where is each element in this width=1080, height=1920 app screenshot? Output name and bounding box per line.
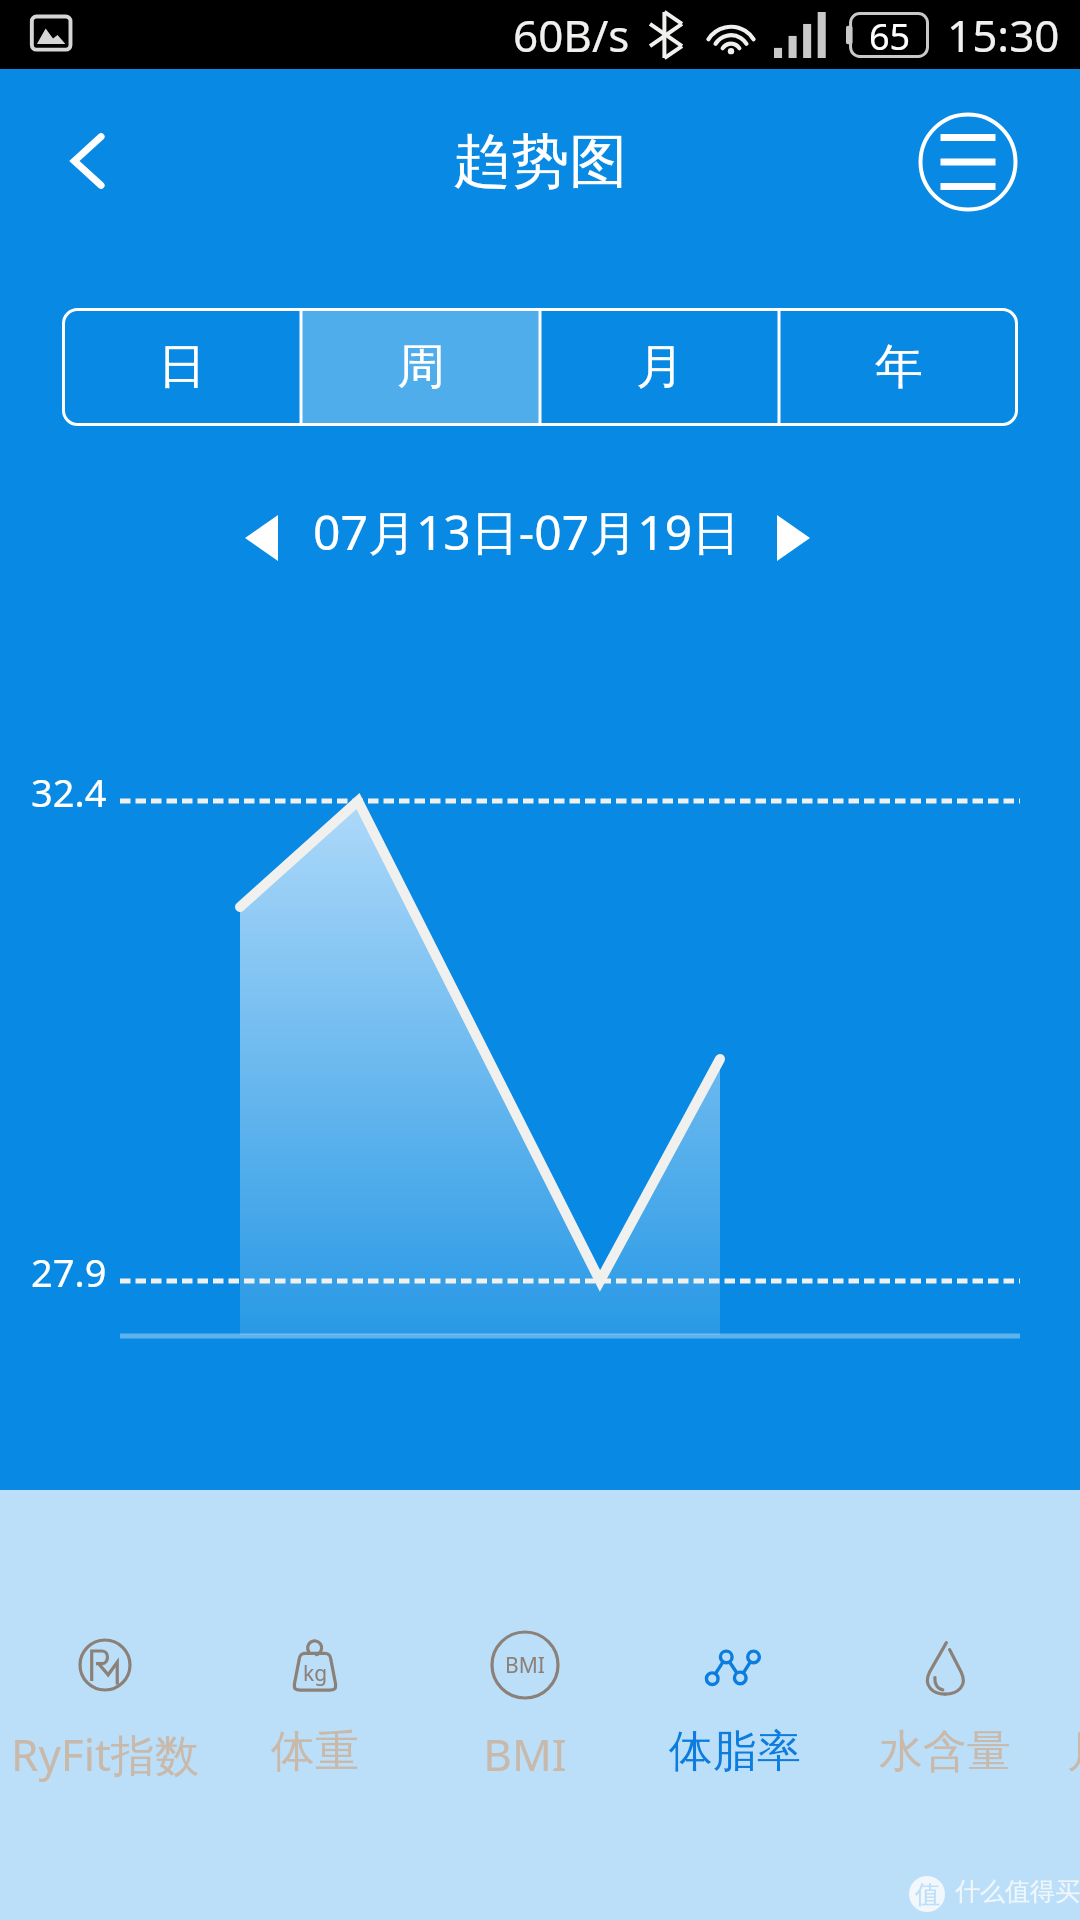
button[interactable]: 年 — [779, 308, 1018, 426]
button[interactable]: Next week — [765, 505, 821, 571]
button[interactable]: RyFit指数 — [0, 1630, 210, 1784]
staticText: 体脂率 — [669, 1724, 801, 1779]
staticText: 体重 — [271, 1724, 359, 1779]
staticText: kg — [303, 1659, 328, 1688]
staticText: 32.4 — [31, 766, 107, 818]
button[interactable]: 体重 — [210, 1630, 420, 1779]
staticText: 水含量 — [879, 1724, 1011, 1779]
staticText: 65 — [869, 12, 911, 58]
button[interactable]: 水含量 — [840, 1630, 1050, 1779]
staticText: 月经周期 — [1067, 1724, 1080, 1779]
staticText: 日 — [158, 337, 206, 397]
button[interactable]: 周 — [301, 308, 540, 426]
button[interactable]: Back — [45, 120, 127, 202]
staticText: 15:30 — [947, 5, 1060, 65]
button[interactable]: 月 — [540, 308, 779, 426]
staticText: 趋势图 — [0, 125, 1080, 198]
button[interactable]: 日 — [62, 308, 301, 426]
staticText: BMI — [483, 1724, 567, 1784]
button[interactable]: 体脂率 — [630, 1630, 840, 1779]
button[interactable]: 月经周期 — [1050, 1630, 1080, 1779]
staticText: 值 — [915, 1879, 940, 1910]
staticText: 27.9 — [31, 1246, 107, 1298]
staticText: 月 — [636, 337, 684, 397]
staticText: 什么值得买 — [955, 1876, 1080, 1907]
staticText: RyFit指数 — [11, 1724, 199, 1784]
button[interactable]: Previous week — [233, 505, 289, 571]
button[interactable]: BMI — [420, 1630, 630, 1784]
button[interactable]: Menu — [918, 112, 1018, 212]
staticText: BMI — [505, 1651, 545, 1680]
staticText: 60B/s — [513, 5, 630, 65]
staticText: 周 — [397, 337, 445, 397]
staticText: 07月13日-07月19日 — [313, 499, 741, 565]
staticText: 年 — [875, 337, 923, 397]
